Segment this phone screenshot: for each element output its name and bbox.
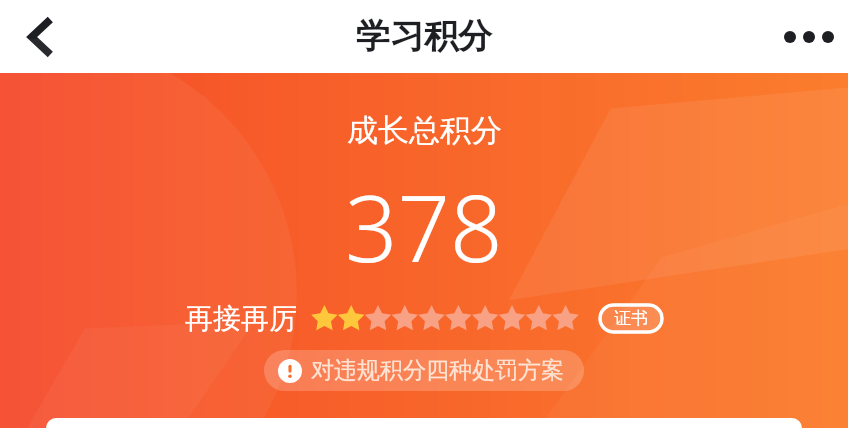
button[interactable]: More options: [770, 5, 848, 69]
button[interactable]: [46, 418, 802, 428]
staticText: 对违规积分四种处罚方案: [311, 356, 564, 385]
button[interactable]: Back: [10, 5, 74, 69]
staticText: 证书: [614, 308, 648, 329]
other: Rating 2 of 10: [311, 302, 579, 336]
staticText: 再接再厉: [185, 301, 297, 336]
staticText: 378: [345, 164, 503, 289]
staticText: 学习积分: [356, 15, 492, 58]
button[interactable]: 对违规积分四种处罚方案: [264, 350, 584, 391]
button[interactable]: 证书: [598, 303, 664, 334]
staticText: 成长总积分: [347, 111, 502, 150]
